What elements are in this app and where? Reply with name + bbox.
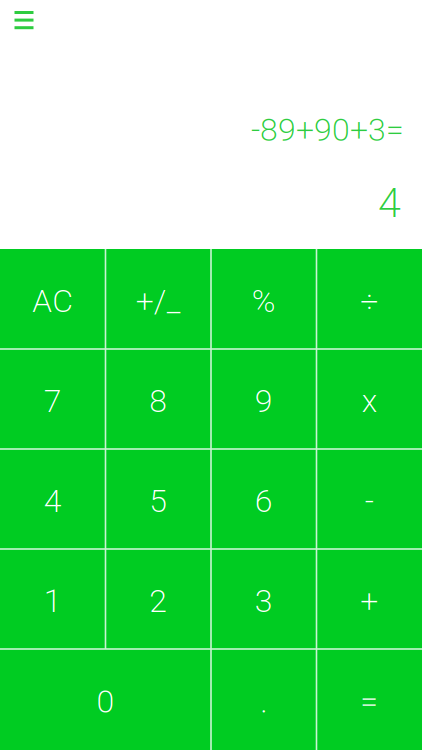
button[interactable]: .	[211, 649, 316, 750]
button[interactable]: 5	[105, 449, 211, 549]
button[interactable]: AC	[0, 249, 105, 349]
button[interactable]: ÷	[316, 249, 422, 349]
staticText: 9	[255, 382, 273, 420]
button[interactable]: Menu	[0, 0, 48, 40]
staticText: .	[260, 683, 267, 720]
button[interactable]: -	[316, 449, 422, 549]
button[interactable]: 2	[105, 549, 211, 649]
button[interactable]: =	[316, 649, 422, 750]
staticText: 6	[255, 482, 273, 520]
button[interactable]: 4	[0, 449, 105, 549]
button[interactable]: 6	[211, 449, 316, 549]
button[interactable]: 9	[211, 349, 316, 449]
staticText: 2	[149, 582, 167, 620]
staticText: 8	[149, 382, 167, 420]
staticText: 5	[149, 482, 167, 520]
staticText: -89+90+3=	[251, 111, 404, 149]
staticText: 0	[96, 683, 114, 720]
staticText: AC	[32, 282, 73, 320]
button[interactable]: %	[211, 249, 316, 349]
button[interactable]: 3	[211, 549, 316, 649]
staticText: ÷	[360, 282, 378, 320]
staticText: +/_	[136, 282, 181, 320]
staticText: 7	[44, 382, 62, 420]
button[interactable]: 7	[0, 349, 105, 449]
staticText: 3	[255, 582, 273, 620]
button[interactable]: x	[316, 349, 422, 449]
button[interactable]: 1	[0, 549, 105, 649]
staticText: -	[365, 482, 374, 520]
staticText: %	[252, 282, 276, 320]
button[interactable]: 0	[0, 649, 211, 750]
staticText: +	[360, 582, 378, 620]
staticText: =	[360, 683, 378, 720]
staticText: x	[362, 382, 377, 420]
button[interactable]: +/_	[105, 249, 211, 349]
button[interactable]: +	[316, 549, 422, 649]
staticText: 4	[378, 179, 401, 227]
staticText: 4	[44, 482, 62, 520]
staticText: 1	[44, 582, 62, 620]
button[interactable]: 8	[105, 349, 211, 449]
